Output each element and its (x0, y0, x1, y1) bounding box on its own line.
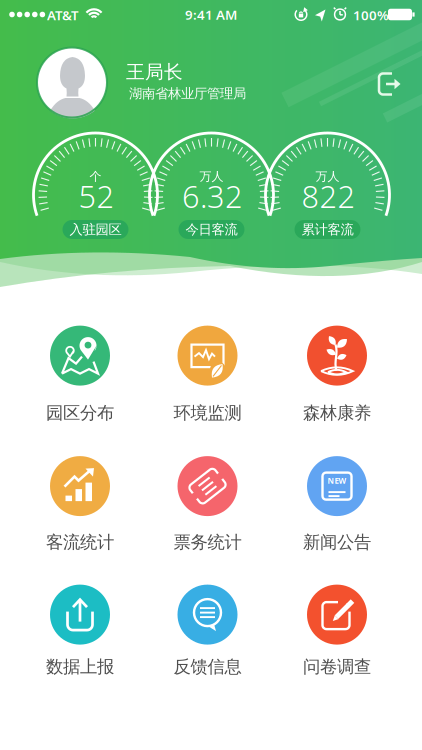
button[interactable]: 王局长 (37, 47, 272, 117)
button[interactable]: NEW (303, 456, 371, 553)
button[interactable]: Log out (373, 68, 405, 100)
button[interactable]: 问卷调查 (303, 585, 371, 677)
staticText: 森林康养 (303, 402, 371, 424)
button[interactable]: 环境监测 (173, 326, 241, 424)
staticText: 9:41 AM (185, 6, 237, 23)
staticText: 个 (89, 169, 101, 184)
staticText: 客流统计 (46, 532, 114, 553)
staticText: 822 (301, 176, 355, 216)
staticText: 新闻公告 (303, 532, 371, 553)
staticText: 园区分布 (46, 402, 114, 424)
staticText: 万人 (199, 169, 223, 184)
staticText: 数据上报 (46, 656, 114, 677)
staticText: 52 (78, 176, 114, 216)
staticText: 累计客流 (301, 221, 353, 238)
button[interactable]: 客流统计 (46, 456, 114, 553)
staticText: NEW (327, 475, 346, 486)
staticText: 湖南省林业厅管理局 (129, 85, 246, 102)
button[interactable]: 票务统计 (173, 456, 241, 553)
staticText: AT&T (47, 6, 79, 24)
button[interactable]: 森林康养 (303, 326, 371, 424)
staticText: 100% (353, 6, 389, 24)
staticText: 入驻园区 (69, 221, 121, 238)
button[interactable]: 园区分布 (46, 326, 114, 424)
staticText: 万人 (315, 169, 339, 184)
staticText: 今日客流 (185, 221, 237, 238)
button[interactable]: 反馈信息 (173, 585, 241, 677)
staticText: 问卷调查 (303, 656, 371, 677)
staticText: 票务统计 (173, 532, 241, 553)
button[interactable]: 数据上报 (46, 585, 114, 677)
staticText: 环境监测 (173, 402, 241, 424)
staticText: 王局长 (126, 60, 183, 83)
staticText: 反馈信息 (173, 656, 241, 677)
staticText: 6.32 (182, 176, 243, 216)
